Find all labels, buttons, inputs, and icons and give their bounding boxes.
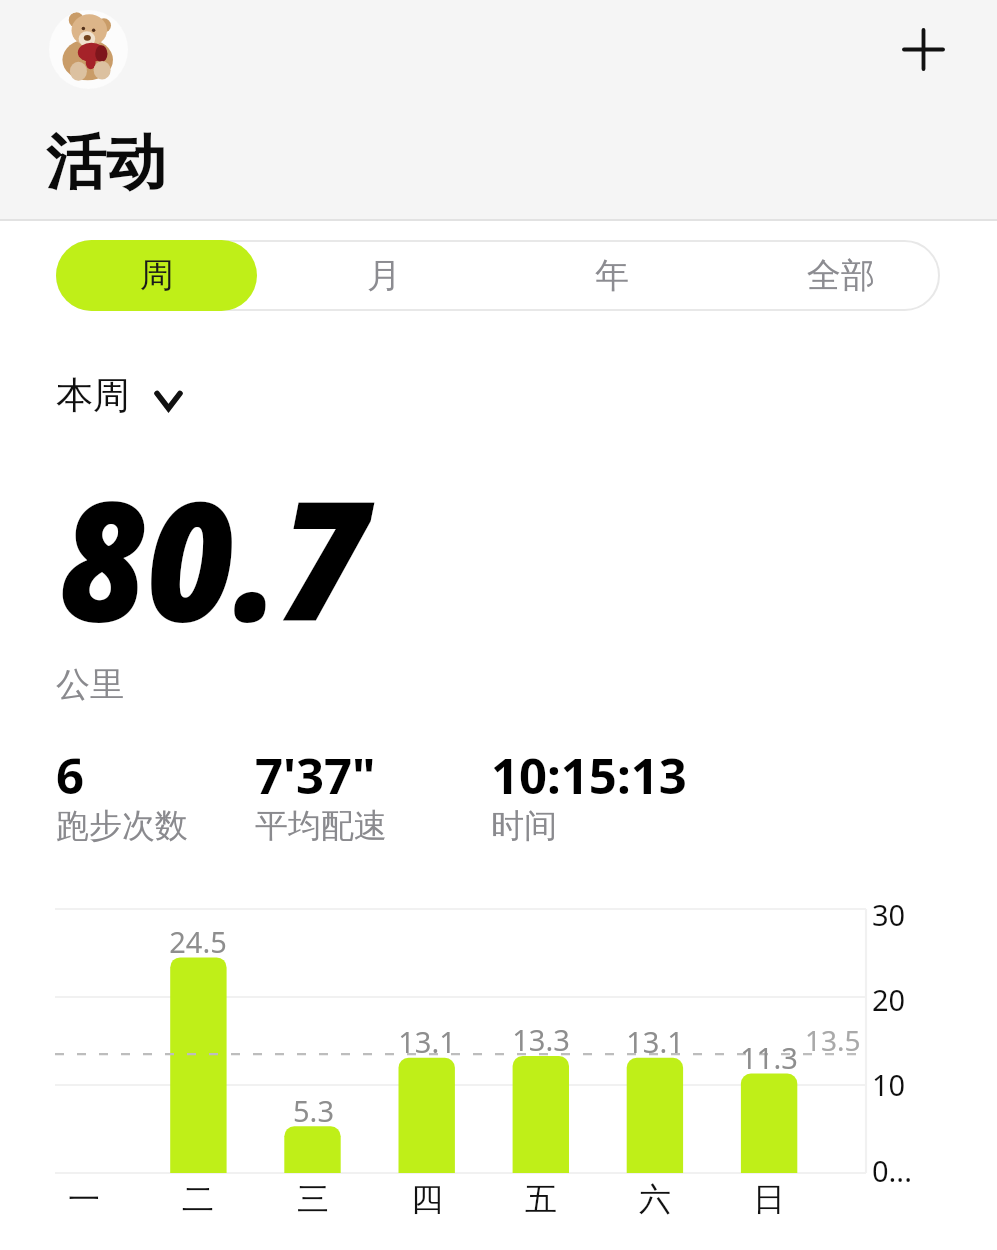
staticText: 三 xyxy=(297,1179,329,1219)
staticText: 5.3 xyxy=(293,1091,334,1130)
staticText: 公里 xyxy=(56,663,124,706)
staticText: 24.5 xyxy=(169,922,227,961)
staticText: 13.1 xyxy=(626,1022,684,1061)
staticText: 30 xyxy=(872,895,906,934)
staticText: 周 xyxy=(140,254,174,297)
staticText: 活动 xyxy=(46,125,166,201)
staticText: 日 xyxy=(753,1179,785,1219)
staticText: 月 xyxy=(367,254,401,297)
button[interactable]: 年 xyxy=(500,240,724,311)
staticText: 四 xyxy=(411,1179,443,1219)
button[interactable]: 全部 xyxy=(729,240,953,311)
staticText: 0... xyxy=(872,1151,912,1190)
staticText: 13.5 xyxy=(805,1021,861,1059)
staticText: 20 xyxy=(872,980,906,1019)
staticText: 本周 xyxy=(56,372,130,419)
button[interactable]: Add activity xyxy=(884,10,963,89)
staticText: 一 xyxy=(68,1179,100,1219)
staticText: 五 xyxy=(525,1179,557,1219)
staticText: 80.7 xyxy=(59,445,368,670)
staticText: 全部 xyxy=(807,254,875,297)
button[interactable]: 月 xyxy=(272,240,496,311)
button[interactable]: 本周 xyxy=(56,372,183,419)
staticText: 13.3 xyxy=(512,1020,570,1059)
staticText: 7'37" xyxy=(255,742,376,809)
button[interactable]: Profile xyxy=(49,10,128,89)
staticText: 10:15:13 xyxy=(491,742,687,809)
staticText: 跑步次数 xyxy=(56,805,188,847)
staticText: 时间 xyxy=(491,805,557,847)
staticText: 13.1 xyxy=(398,1022,456,1061)
staticText: 11.3 xyxy=(740,1038,798,1077)
staticText: 10 xyxy=(872,1065,906,1104)
button[interactable]: 周 xyxy=(56,240,257,311)
staticText: 6 xyxy=(56,742,85,809)
staticText: 六 xyxy=(639,1179,671,1219)
staticText: 二 xyxy=(182,1179,214,1219)
staticText: 平均配速 xyxy=(255,805,387,847)
staticText: 年 xyxy=(595,254,629,297)
